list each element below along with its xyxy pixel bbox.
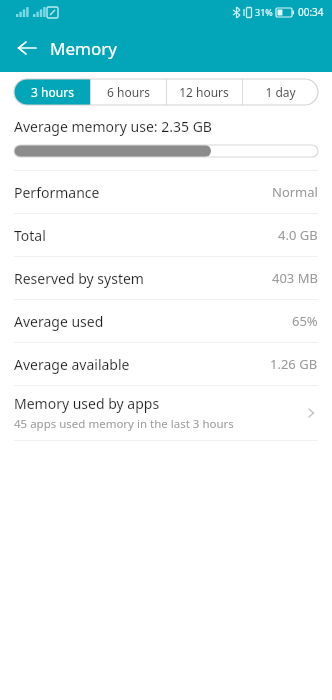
staticText: 12 hours: [179, 84, 229, 100]
button[interactable]: Average available: [0, 343, 332, 385]
staticText: Average available: [14, 355, 130, 374]
button[interactable]: Total: [0, 214, 332, 256]
staticText: 65%: [292, 312, 318, 330]
button[interactable]: 12 hours: [166, 79, 242, 105]
staticText: 45 apps used memory in the last 3 hours: [14, 416, 234, 432]
button[interactable]: Performance: [0, 171, 332, 213]
staticText: 3 hours: [31, 84, 74, 100]
staticText: Normal: [272, 183, 318, 201]
button[interactable]: 1 day: [242, 79, 318, 105]
staticText: 6 hours: [107, 84, 150, 100]
staticText: 1.26 GB: [270, 355, 318, 373]
button[interactable]: Reserved by system: [0, 257, 332, 299]
button[interactable]: 6 hours: [90, 79, 166, 105]
staticText: 31%: [255, 6, 273, 18]
staticText: Memory: [50, 37, 117, 60]
staticText: Average memory use: 2.35 GB: [14, 117, 212, 136]
button[interactable]: 3 hours: [14, 79, 90, 105]
button[interactable]: Memory used by apps: [0, 386, 332, 440]
staticText: Average used: [14, 312, 104, 331]
staticText: 403 MB: [272, 269, 318, 287]
staticText: 4.0 GB: [278, 226, 318, 244]
staticText: 00:34: [298, 5, 324, 19]
button[interactable]: Average used: [0, 300, 332, 342]
staticText: Total: [14, 226, 46, 245]
staticText: 1 day: [265, 84, 296, 100]
staticText: Reserved by system: [14, 269, 144, 288]
button[interactable]: Back: [11, 32, 43, 64]
staticText: Performance: [14, 183, 100, 202]
staticText: Memory used by apps: [14, 394, 160, 413]
